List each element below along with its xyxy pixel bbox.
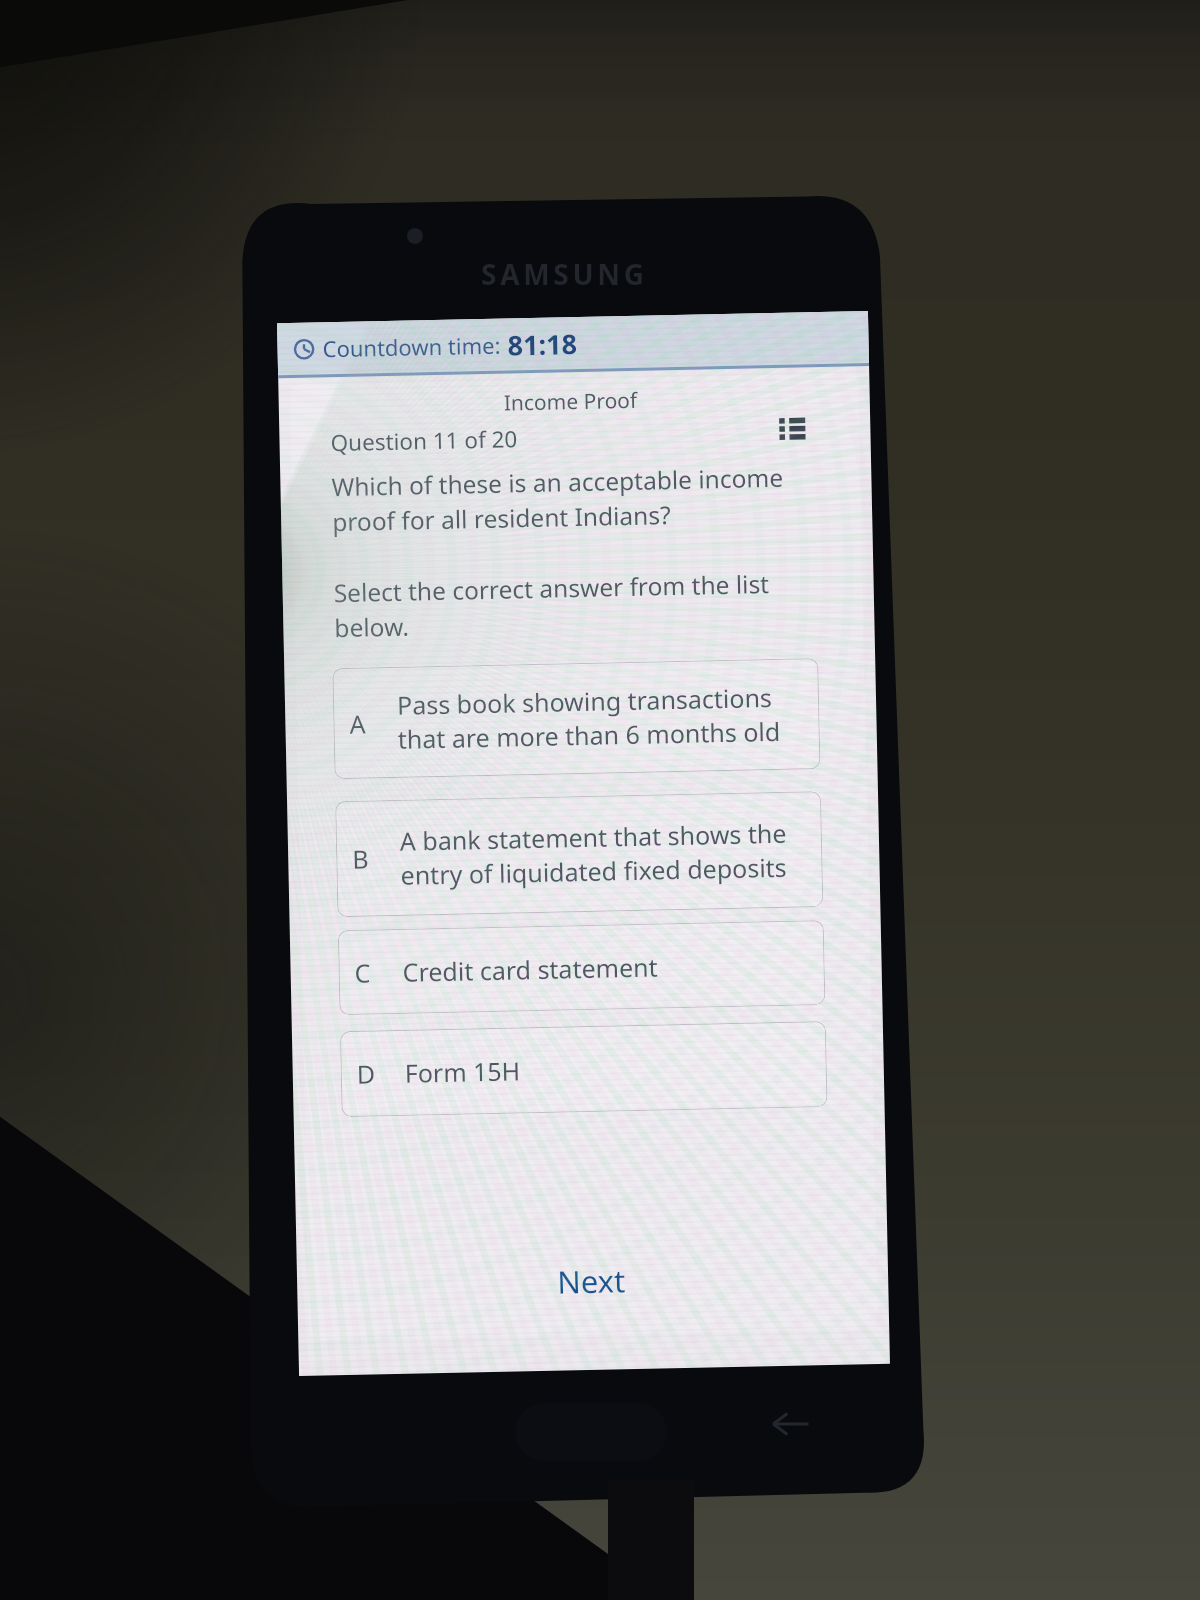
staticText: Credit card statement [402, 949, 658, 989]
staticText: C [354, 955, 371, 990]
button[interactable]: Question list [771, 407, 814, 450]
staticText: Income Proof [503, 386, 638, 418]
button[interactable]: D [340, 1021, 828, 1117]
staticText: Form 15H [404, 1053, 521, 1090]
staticText: 81:18 [507, 325, 578, 363]
staticText: Next [557, 1259, 627, 1303]
staticText: A bank statement that shows the entry of… [399, 816, 788, 893]
staticText: Question 11 of 20 [330, 423, 518, 458]
staticText: Pass book showing transactions that are … [397, 680, 781, 757]
staticText: SAMSUNG [481, 255, 648, 293]
button[interactable]: C [338, 920, 825, 1015]
staticText: A [349, 706, 366, 741]
other: Back [768, 1402, 812, 1446]
button[interactable]: A [332, 658, 820, 779]
staticText: D [356, 1056, 376, 1091]
button[interactable]: Next [494, 1251, 689, 1311]
staticText: B [352, 841, 370, 876]
staticText: Select the correct answer from the list … [333, 567, 771, 645]
staticText: Countdown time: [322, 330, 501, 363]
staticText: Which of these is an acceptable income p… [331, 461, 784, 539]
button[interactable]: B [335, 791, 823, 917]
